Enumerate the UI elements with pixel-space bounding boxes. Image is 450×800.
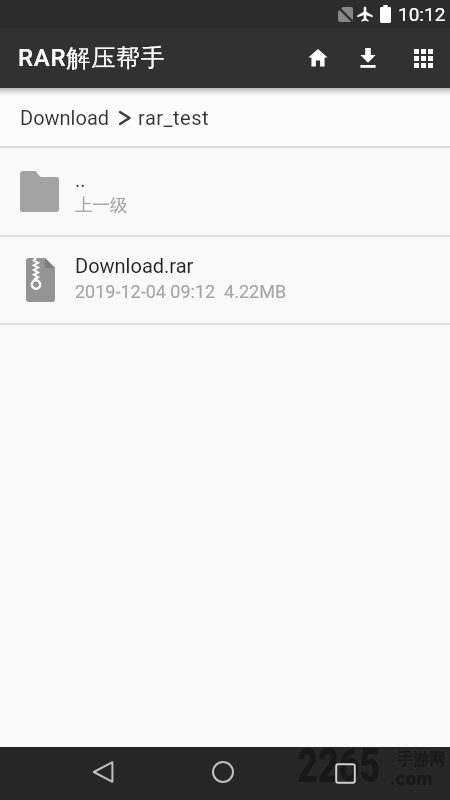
staticText: 10:12: [398, 3, 446, 25]
button[interactable]: [321, 747, 369, 799]
button[interactable]: [294, 34, 342, 82]
button[interactable]: Download: [20, 106, 110, 129]
staticText: 2265: [297, 737, 381, 794]
staticText: Download.rar: [75, 254, 194, 277]
staticText: RAR解压帮手: [18, 43, 166, 73]
button[interactable]: [79, 747, 127, 797]
staticText: 2019-12-04 09:12 4.22MB: [75, 281, 287, 302]
button[interactable]: Download.rar: [0, 237, 450, 323]
staticText: .com: [390, 767, 433, 789]
button[interactable]: [199, 747, 247, 797]
button[interactable]: [399, 34, 447, 82]
button[interactable]: rar_test: [138, 106, 210, 129]
button[interactable]: [344, 34, 392, 82]
staticText: 手游网: [397, 750, 445, 770]
staticText: 上一级: [75, 194, 128, 216]
button[interactable]: ..: [0, 148, 450, 235]
staticText: ..: [75, 168, 86, 191]
